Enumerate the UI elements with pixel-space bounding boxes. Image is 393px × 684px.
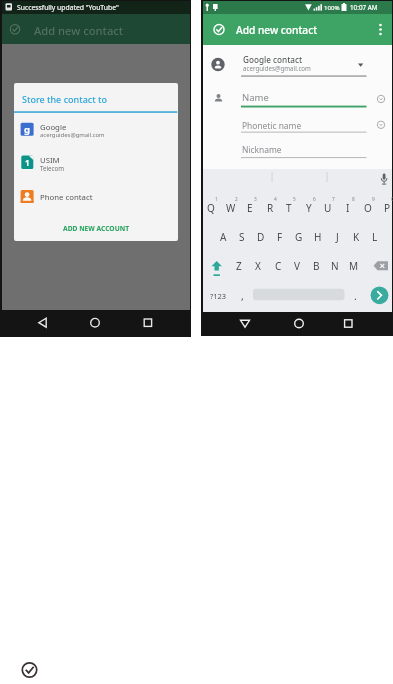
staticText: X	[255, 259, 261, 273]
button[interactable]: U	[288, 198, 368, 218]
staticText: 7	[332, 196, 335, 203]
staticText: P	[384, 201, 391, 215]
staticText: ?123	[210, 291, 227, 301]
staticText: .	[354, 289, 357, 303]
button[interactable]: P	[347, 198, 393, 218]
staticText: 1	[215, 196, 218, 203]
staticText: I	[346, 201, 350, 215]
button[interactable]	[2, 14, 190, 44]
button[interactable]: Add new contact	[34, 20, 124, 40]
button[interactable]: L	[335, 227, 393, 247]
staticText: Nickname	[242, 144, 282, 155]
staticText: 100%	[324, 3, 340, 11]
staticText: Google	[40, 122, 67, 133]
staticText: J	[336, 230, 339, 244]
staticText: Phonetic name	[242, 120, 302, 131]
staticText: Telecom	[40, 164, 65, 172]
staticText: A	[220, 230, 227, 244]
staticText: O	[364, 201, 372, 215]
staticText: C	[275, 259, 282, 273]
button[interactable]: Y	[269, 198, 349, 218]
button[interactable]: E	[210, 198, 290, 218]
button[interactable]	[14, 186, 177, 210]
button[interactable]: X	[218, 256, 298, 276]
staticText: Store the contact to	[22, 93, 107, 105]
button[interactable]	[203, 14, 392, 45]
button[interactable]: Add new contact	[236, 20, 318, 40]
staticText: R	[267, 201, 274, 215]
staticText: Add new contact	[236, 23, 318, 37]
staticText: U	[324, 201, 332, 215]
button[interactable]	[241, 90, 367, 106]
staticText: 0	[391, 196, 393, 203]
button[interactable]: W	[191, 198, 271, 218]
staticText: N	[331, 259, 339, 273]
staticText: L	[372, 230, 378, 244]
staticText: E	[247, 201, 253, 215]
button[interactable]: C	[238, 256, 318, 276]
button[interactable]	[241, 117, 367, 132]
staticText: 8	[352, 196, 355, 203]
button[interactable]: ?123	[178, 286, 258, 306]
button[interactable]: G	[259, 227, 339, 247]
button[interactable]: ADD NEW ACCOUNT	[56, 218, 136, 238]
staticText: Google contact	[243, 54, 303, 65]
button[interactable]: N	[295, 256, 375, 276]
button[interactable]: I	[308, 198, 388, 218]
button[interactable]: O	[328, 198, 393, 218]
staticText: Q	[207, 201, 215, 215]
staticText: K	[353, 230, 360, 244]
button[interactable]	[370, 286, 389, 305]
staticText: 1	[25, 157, 30, 168]
staticText: USIM	[40, 155, 60, 166]
button[interactable]: .	[315, 286, 393, 306]
staticText: ,	[241, 289, 244, 303]
staticText: acerguides@gmail.com	[243, 64, 311, 72]
button[interactable]: B	[276, 256, 356, 276]
button[interactable]	[14, 119, 177, 147]
staticText: acerguides@gmail.com	[40, 131, 105, 139]
staticText: 5	[293, 196, 296, 203]
staticText: g	[24, 123, 31, 136]
staticText: 3	[254, 196, 257, 203]
staticText: Y	[306, 201, 312, 215]
button[interactable]: J	[297, 227, 377, 247]
staticText: F	[277, 230, 283, 244]
staticText: Add new contact	[34, 23, 124, 38]
button[interactable]	[18, 659, 42, 683]
button[interactable]: D	[221, 227, 301, 247]
button[interactable]	[241, 142, 367, 157]
button[interactable]: K	[316, 227, 393, 247]
button[interactable]: R	[230, 198, 310, 218]
button[interactable]: T	[249, 198, 329, 218]
button[interactable]: ,	[202, 286, 282, 306]
button[interactable]: V	[257, 256, 337, 276]
staticText: V	[294, 259, 300, 273]
button[interactable]	[235, 50, 370, 76]
staticText: G	[295, 230, 303, 244]
staticText: S	[239, 230, 245, 244]
staticText: B	[313, 259, 320, 273]
staticText: 9	[372, 196, 375, 203]
staticText: W	[226, 201, 236, 215]
staticText: Name	[242, 91, 269, 104]
staticText: ADD NEW ACCOUNT	[63, 224, 129, 233]
staticText: Successfully updated "YouTube"	[17, 3, 119, 12]
button[interactable]: H	[278, 227, 358, 247]
staticText: H	[314, 230, 322, 244]
staticText: M	[349, 259, 359, 273]
button[interactable]: M	[314, 256, 393, 276]
button[interactable]: F	[240, 227, 320, 247]
button[interactable]	[14, 152, 177, 180]
staticText: 4	[274, 196, 277, 203]
staticText: T	[286, 201, 292, 215]
button[interactable]: A	[183, 227, 263, 247]
staticText: Z	[236, 259, 242, 273]
button[interactable]: Q	[171, 198, 251, 218]
button[interactable]: Z	[199, 256, 279, 276]
staticText: D	[257, 230, 265, 244]
button[interactable]: S	[202, 227, 282, 247]
staticText: 6	[313, 196, 316, 203]
staticText: 2	[235, 196, 238, 203]
